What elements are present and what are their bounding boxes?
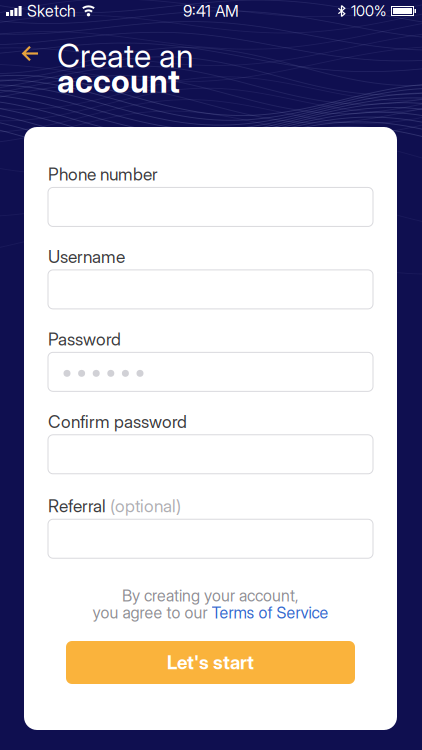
staticText: you agree to our	[92, 603, 211, 622]
button[interactable]: Username	[48, 270, 373, 309]
button[interactable]: Referral (optional)	[48, 519, 373, 558]
button[interactable]: Password	[48, 352, 373, 391]
staticText: By creating your account,	[122, 586, 299, 605]
staticText: Password	[48, 329, 121, 349]
staticText: Confirm password	[48, 411, 187, 432]
staticText: 9:41 AM	[183, 2, 239, 20]
button[interactable]: Let's start	[66, 641, 355, 684]
button[interactable]: Confirm password	[48, 435, 373, 474]
staticText: account	[57, 62, 180, 100]
staticText: Terms of Service	[211, 603, 328, 622]
staticText: Let's start	[167, 651, 254, 673]
staticText: 100%	[351, 2, 386, 20]
button[interactable]: Back	[22, 37, 39, 61]
staticText: (optional)	[110, 496, 181, 516]
staticText: Create an	[57, 37, 194, 75]
staticText: Username	[48, 246, 125, 267]
staticText: Sketch	[27, 2, 76, 20]
staticText: Phone number	[48, 164, 158, 184]
button[interactable]: Terms of Service	[211, 603, 328, 622]
staticText: Referral	[48, 496, 106, 516]
